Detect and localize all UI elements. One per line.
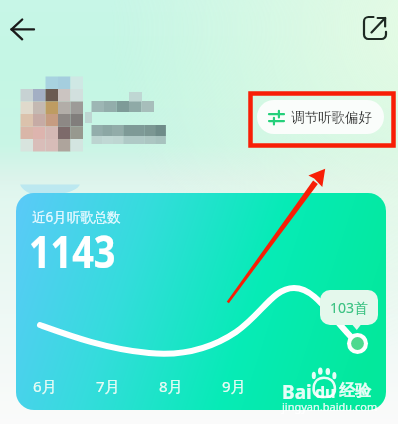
button[interactable]: Back bbox=[0, 8, 46, 51]
staticText: 近6月听歌总数 bbox=[32, 208, 121, 226]
staticText: Bai bbox=[282, 379, 312, 405]
staticText: 调节听歌偏好 bbox=[291, 109, 372, 126]
staticText: 经验 bbox=[339, 381, 371, 401]
staticText: 6月 bbox=[33, 376, 57, 396]
staticText: jingyan.baidu.com bbox=[282, 399, 378, 414]
staticText: du bbox=[315, 381, 336, 403]
staticText: 7月 bbox=[96, 376, 120, 396]
button[interactable]: Share bbox=[354, 7, 397, 51]
staticText: 103首 bbox=[330, 298, 369, 317]
staticText: 1143 bbox=[29, 219, 116, 281]
button[interactable]: 调节听歌偏好 bbox=[257, 100, 384, 134]
staticText: 9月 bbox=[222, 376, 246, 396]
staticText: 8月 bbox=[159, 376, 183, 396]
